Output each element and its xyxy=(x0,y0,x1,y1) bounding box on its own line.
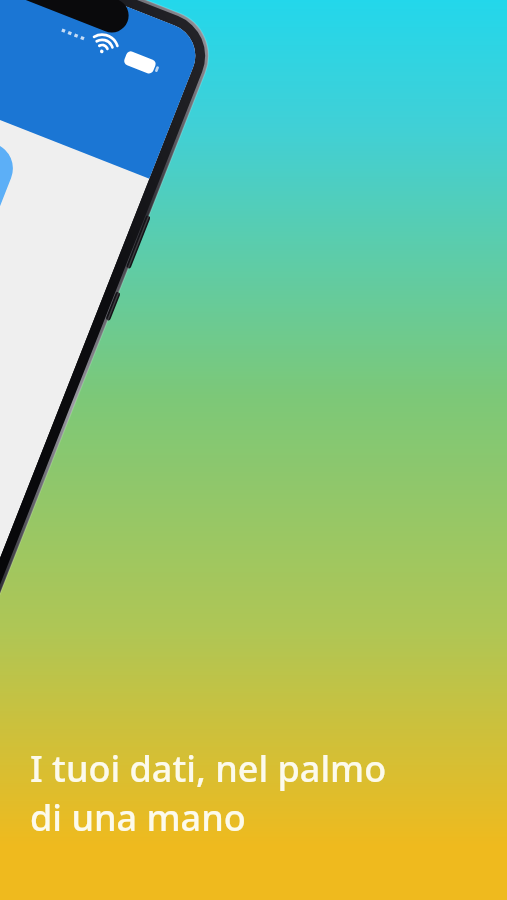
button[interactable]: Anteprima dell'app sullo smartphone xyxy=(0,0,507,900)
staticText: di una mano xyxy=(30,793,246,842)
staticText: I tuoi dati, nel palmo xyxy=(30,744,387,793)
